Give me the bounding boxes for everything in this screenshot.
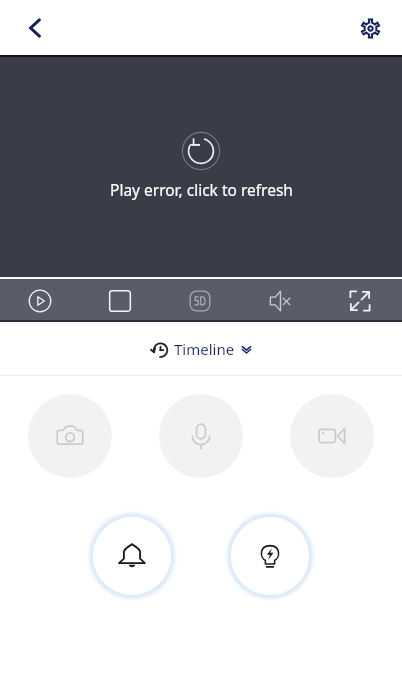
button[interactable]: Light — [231, 517, 309, 595]
staticText: Play error, click to refresh — [110, 179, 293, 200]
button[interactable]: Snapshot — [80, 279, 160, 322]
button[interactable]: Settings — [347, 5, 393, 51]
staticText: Timeline — [174, 339, 235, 359]
button[interactable]: Record — [290, 394, 374, 478]
button[interactable]: Play — [0, 279, 80, 322]
button[interactable]: Siren — [93, 517, 171, 595]
button[interactable]: Talk — [159, 394, 243, 478]
button[interactable]: Video quality SD — [160, 279, 240, 322]
button[interactable]: Back — [12, 5, 58, 51]
button[interactable]: Mute — [240, 279, 320, 322]
button[interactable]: Timeline — [141, 331, 262, 367]
button[interactable]: Take photo — [28, 394, 112, 478]
button[interactable]: Refresh video — [0, 55, 402, 277]
button[interactable]: Fullscreen — [320, 279, 400, 322]
